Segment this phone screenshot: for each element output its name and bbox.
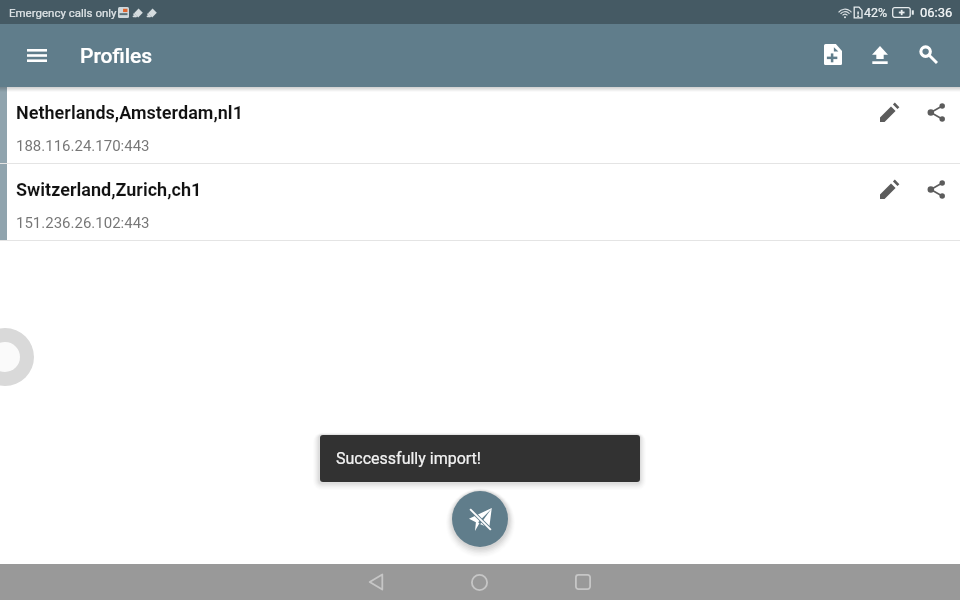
button[interactable]: Edit	[866, 89, 912, 135]
button[interactable]: Switzerland,Zurich,ch1	[0, 164, 960, 240]
staticText: Switzerland,Zurich,ch1	[16, 179, 202, 200]
button[interactable]: Netherlands,Amsterdam,nl1	[0, 87, 960, 163]
staticText: 42%	[864, 5, 888, 20]
button[interactable]: Share	[913, 166, 959, 212]
button[interactable]: New profile	[808, 31, 855, 78]
button[interactable]: Home	[461, 564, 497, 600]
button[interactable]: Disconnect	[452, 491, 508, 547]
button[interactable]: Search	[905, 31, 952, 78]
button[interactable]: Successfully import!	[320, 435, 640, 482]
staticText: 151.236.26.102:443	[16, 214, 150, 232]
button[interactable]: Recents	[565, 564, 601, 600]
staticText: 06:36	[920, 5, 953, 20]
staticText: Successfully import!	[336, 449, 481, 468]
button[interactable]: Share	[913, 89, 959, 135]
staticText: Emergency calls only	[9, 6, 117, 19]
staticText: Netherlands,Amsterdam,nl1	[16, 102, 243, 123]
button[interactable]: Back	[358, 564, 394, 600]
button[interactable]: Menu	[12, 31, 61, 80]
button[interactable]: Import	[856, 31, 903, 78]
staticText: 188.116.24.170:443	[16, 137, 150, 155]
button[interactable]: Edit	[866, 166, 912, 212]
staticText: Profiles	[80, 44, 153, 69]
